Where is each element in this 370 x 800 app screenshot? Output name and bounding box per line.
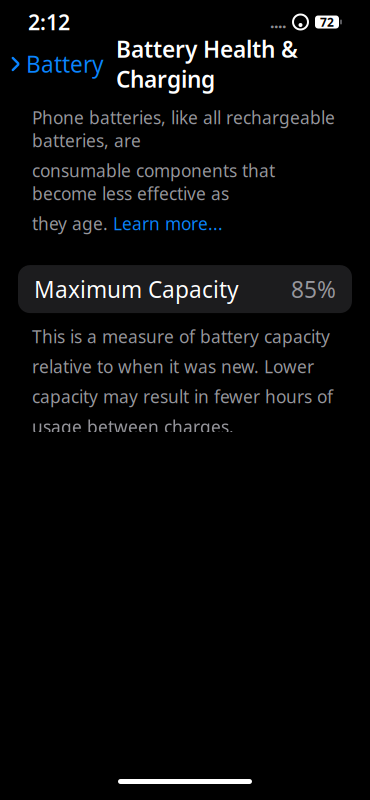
staticText: Battery (26, 49, 104, 79)
staticText: This is a measure of battery capacity re… (32, 325, 333, 438)
button[interactable]: Battery (0, 43, 104, 85)
staticText: To reduce battery aging, iPhone learns f… (32, 667, 328, 800)
button[interactable]: Learn more... (113, 212, 223, 235)
staticText: 85% (291, 274, 336, 304)
staticText: Maximum Capacity (34, 274, 239, 304)
staticText: consumable components that become less e… (32, 159, 275, 205)
staticText: they age. (32, 212, 113, 235)
staticText: Phone batteries, like all rechargeable b… (32, 106, 335, 152)
staticText: Learn more... (113, 212, 223, 235)
staticText: 72 (320, 14, 334, 30)
button[interactable]: Maximum Capacity (18, 265, 352, 313)
staticText: 2:12 (28, 8, 70, 36)
staticText: .... (270, 11, 286, 33)
staticText: Battery Health & Charging (116, 34, 298, 94)
